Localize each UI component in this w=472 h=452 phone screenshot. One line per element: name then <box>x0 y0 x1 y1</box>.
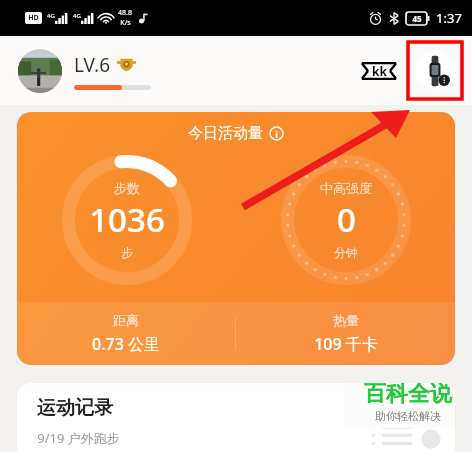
button[interactable]: 距离 <box>17 312 235 355</box>
button[interactable]: 运动记录 <box>17 383 455 452</box>
staticText: 百科全说 <box>364 383 452 408</box>
staticText: LV.6 <box>74 52 110 78</box>
staticText: 45 <box>412 13 422 24</box>
staticText: 4G <box>73 12 81 20</box>
staticText: 1:37 <box>436 9 462 27</box>
button[interactable]: My device <box>408 42 462 99</box>
staticText: 运动记录 <box>37 396 113 420</box>
staticText: 中高强度 <box>320 180 372 196</box>
button[interactable]: Coupons <box>360 56 398 86</box>
staticText: 0 <box>337 197 356 242</box>
staticText: 分钟 <box>334 245 358 260</box>
staticText: 109 千卡 <box>314 333 378 355</box>
staticText: 4G <box>47 12 55 20</box>
staticText: 热量 <box>333 312 359 328</box>
staticText: HD <box>28 13 39 23</box>
staticText: 步数 <box>114 180 140 196</box>
staticText: 9/19 户外跑步 <box>37 429 120 447</box>
button[interactable]: 今日活动量 <box>17 112 455 365</box>
staticText: 1036 <box>89 197 165 242</box>
staticText: 今日活动量 <box>188 124 263 143</box>
staticText: i <box>275 128 278 140</box>
staticText: 助你轻松解决 <box>375 409 441 423</box>
staticText: K/s <box>120 18 131 28</box>
staticText: 距离 <box>113 312 139 328</box>
button[interactable]: Profile avatar <box>18 49 62 93</box>
staticText: 0.73 公里 <box>92 333 160 355</box>
staticText: kk <box>372 63 387 79</box>
staticText: 48.8 <box>118 8 132 18</box>
staticText: 步 <box>121 245 133 260</box>
button[interactable]: 热量 <box>236 312 455 355</box>
button[interactable]: Info <box>269 126 284 141</box>
